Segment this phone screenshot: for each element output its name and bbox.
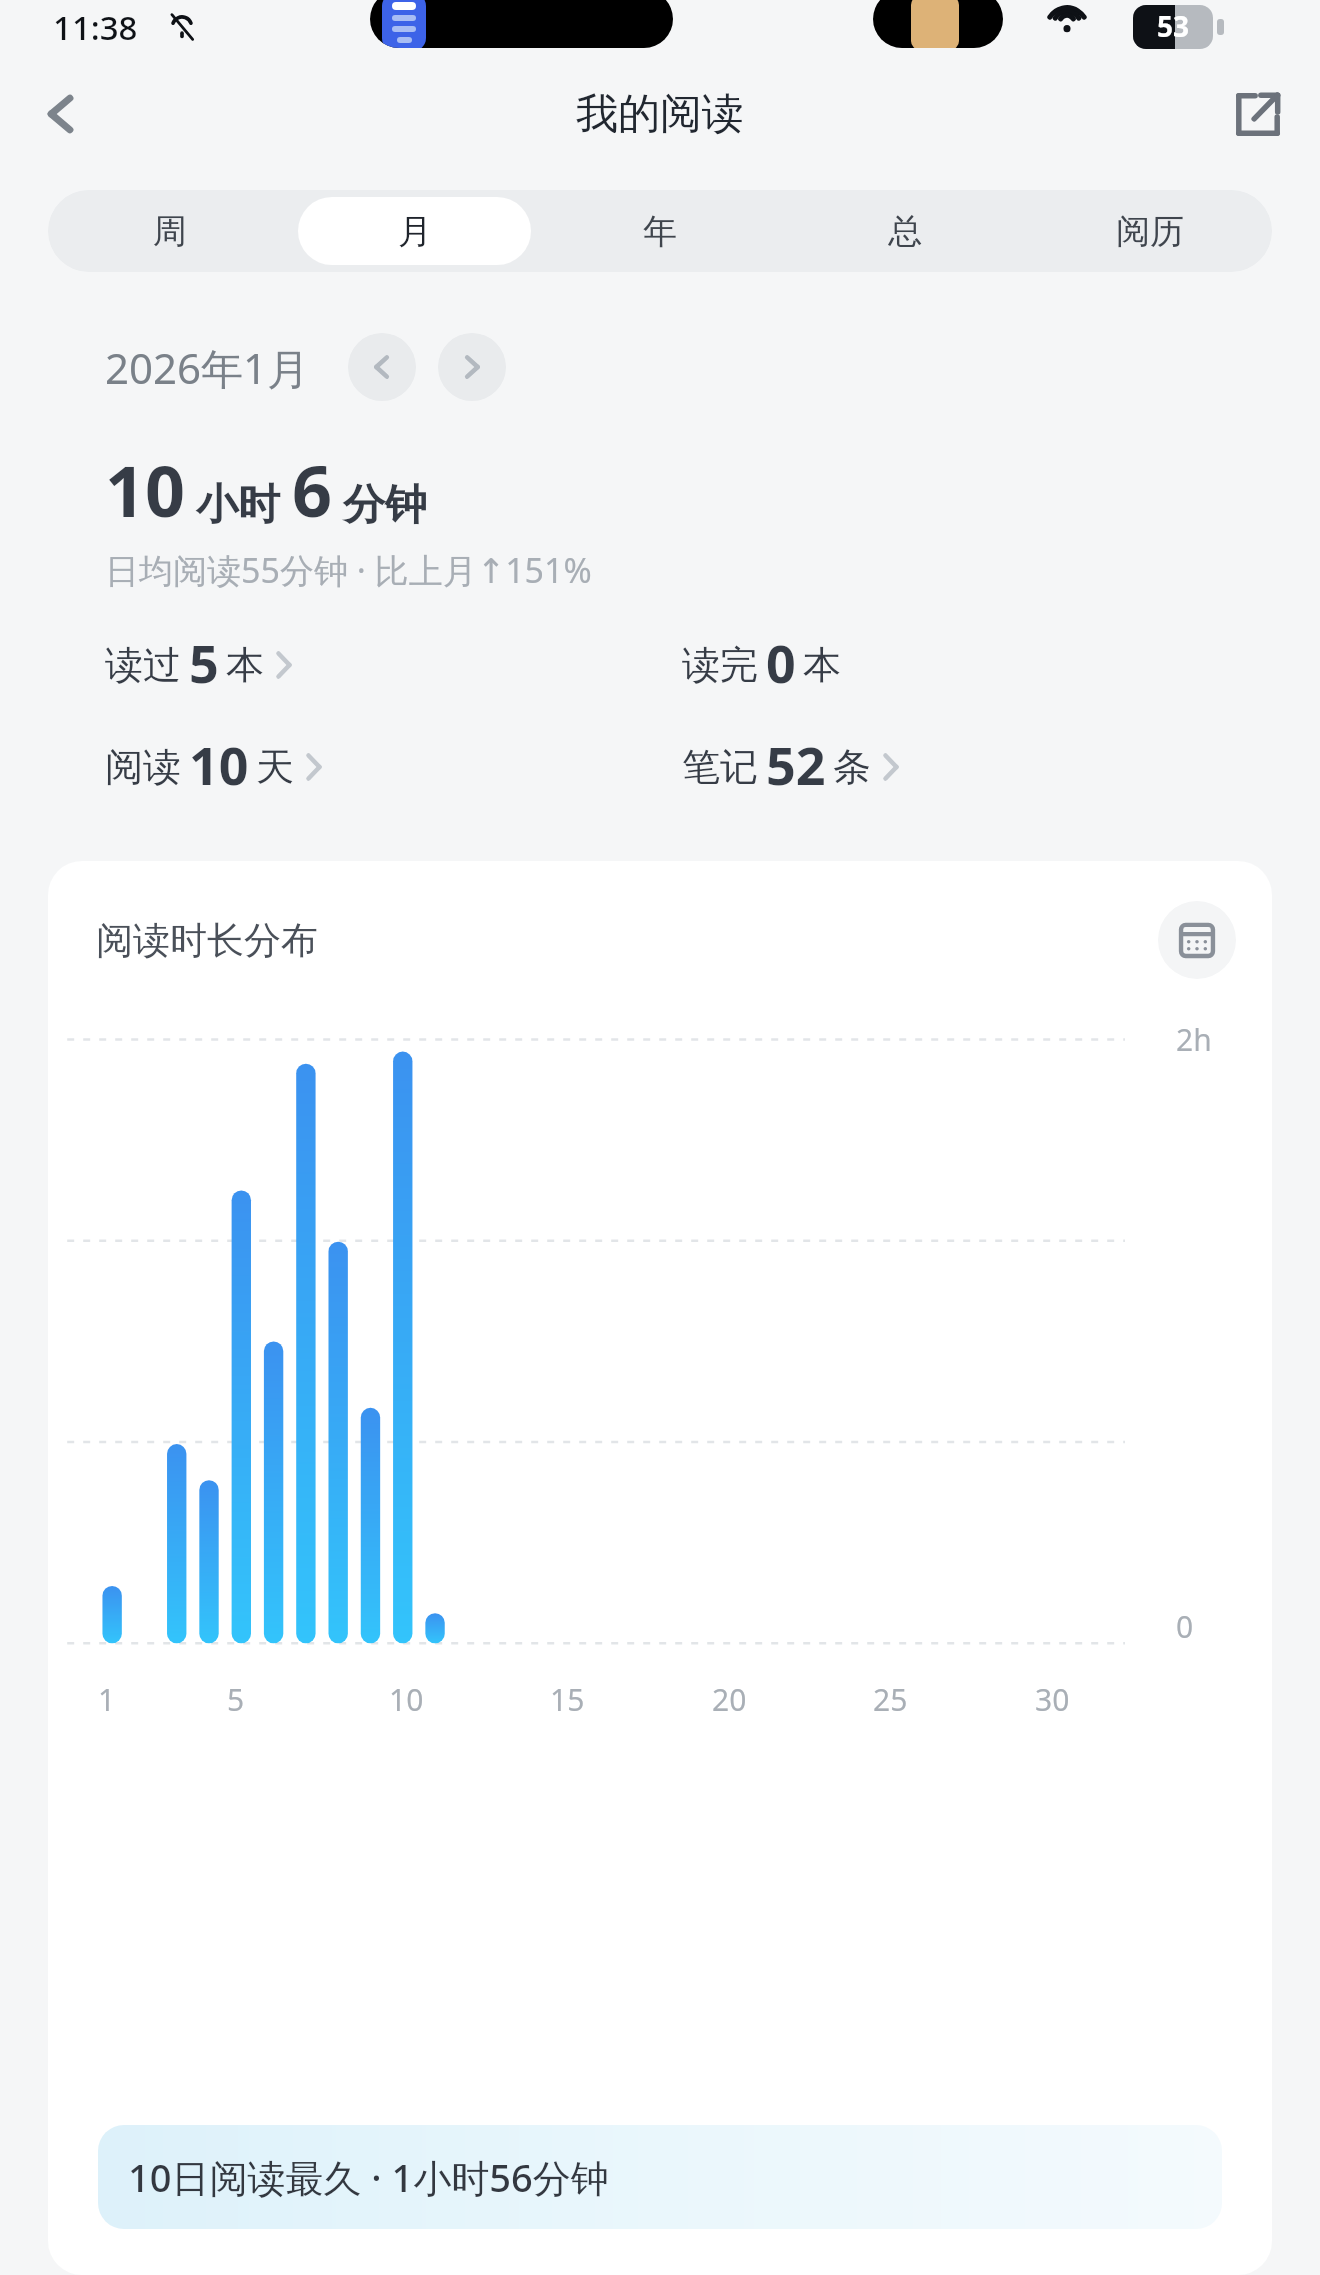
button[interactable]: 月 xyxy=(298,197,531,265)
button[interactable]: Share xyxy=(1214,70,1302,158)
button[interactable]: Next month xyxy=(438,333,506,401)
button[interactable]: 阅历 xyxy=(1033,197,1266,265)
staticText: 阅读时长分布 xyxy=(96,917,318,964)
button[interactable]: Previous month xyxy=(348,333,416,401)
button[interactable]: 总 xyxy=(788,197,1021,265)
staticText: 10 xyxy=(105,442,186,537)
staticText: 25 xyxy=(873,1679,908,1720)
staticText: 分钟 xyxy=(343,479,427,532)
button[interactable]: 笔记 xyxy=(682,729,899,805)
staticText: 2026年1月 xyxy=(105,339,310,396)
staticText: 10 xyxy=(189,729,249,800)
staticText: 30 xyxy=(1035,1679,1070,1720)
staticText: 2h xyxy=(1176,1019,1212,1060)
staticText: 53 xyxy=(1157,7,1190,45)
staticText: 10日阅读最久 · 1小时56分钟 xyxy=(128,2151,609,2203)
staticText: 小时 xyxy=(196,479,280,532)
button[interactable]: 年 xyxy=(543,197,776,265)
button[interactable]: 读过 xyxy=(105,627,292,703)
staticText: 年 xyxy=(643,210,677,253)
staticText: 52 xyxy=(766,729,826,800)
button[interactable]: 阅读 xyxy=(105,729,322,805)
staticText: 月 xyxy=(398,210,432,253)
staticText: 1 xyxy=(98,1679,116,1720)
button[interactable]: 读完 xyxy=(682,627,841,703)
staticText: 5 xyxy=(227,1679,245,1720)
staticText: 总 xyxy=(888,210,922,253)
staticText: 10 xyxy=(389,1679,424,1720)
staticText: 本 xyxy=(226,641,264,689)
button[interactable]: 周 xyxy=(54,197,286,265)
staticText: 6 xyxy=(292,442,333,537)
staticText: 读完 xyxy=(682,641,758,689)
staticText: 0 xyxy=(1176,1606,1194,1647)
staticText: 5 xyxy=(189,627,219,698)
staticText: 11:38 xyxy=(53,5,138,50)
staticText: 周 xyxy=(153,210,187,253)
staticText: 20 xyxy=(712,1679,747,1720)
staticText: 0 xyxy=(766,627,796,698)
staticText: 阅读 xyxy=(105,743,181,791)
button[interactable]: Back xyxy=(18,70,106,158)
staticText: 本 xyxy=(803,641,841,689)
button[interactable]: Calendar xyxy=(1158,901,1236,979)
staticText: 日均阅读55分钟 · 比上月↑151% xyxy=(105,547,592,593)
staticText: 读过 xyxy=(105,641,181,689)
staticText: 天 xyxy=(256,743,294,791)
staticText: 15 xyxy=(550,1679,585,1720)
staticText: 阅历 xyxy=(1116,210,1184,253)
staticText: 笔记 xyxy=(682,743,758,791)
staticText: 我的阅读 xyxy=(576,88,744,141)
staticText: 条 xyxy=(833,743,871,791)
button[interactable]: 10日阅读最久 · 1小时56分钟 xyxy=(98,2125,1222,2229)
